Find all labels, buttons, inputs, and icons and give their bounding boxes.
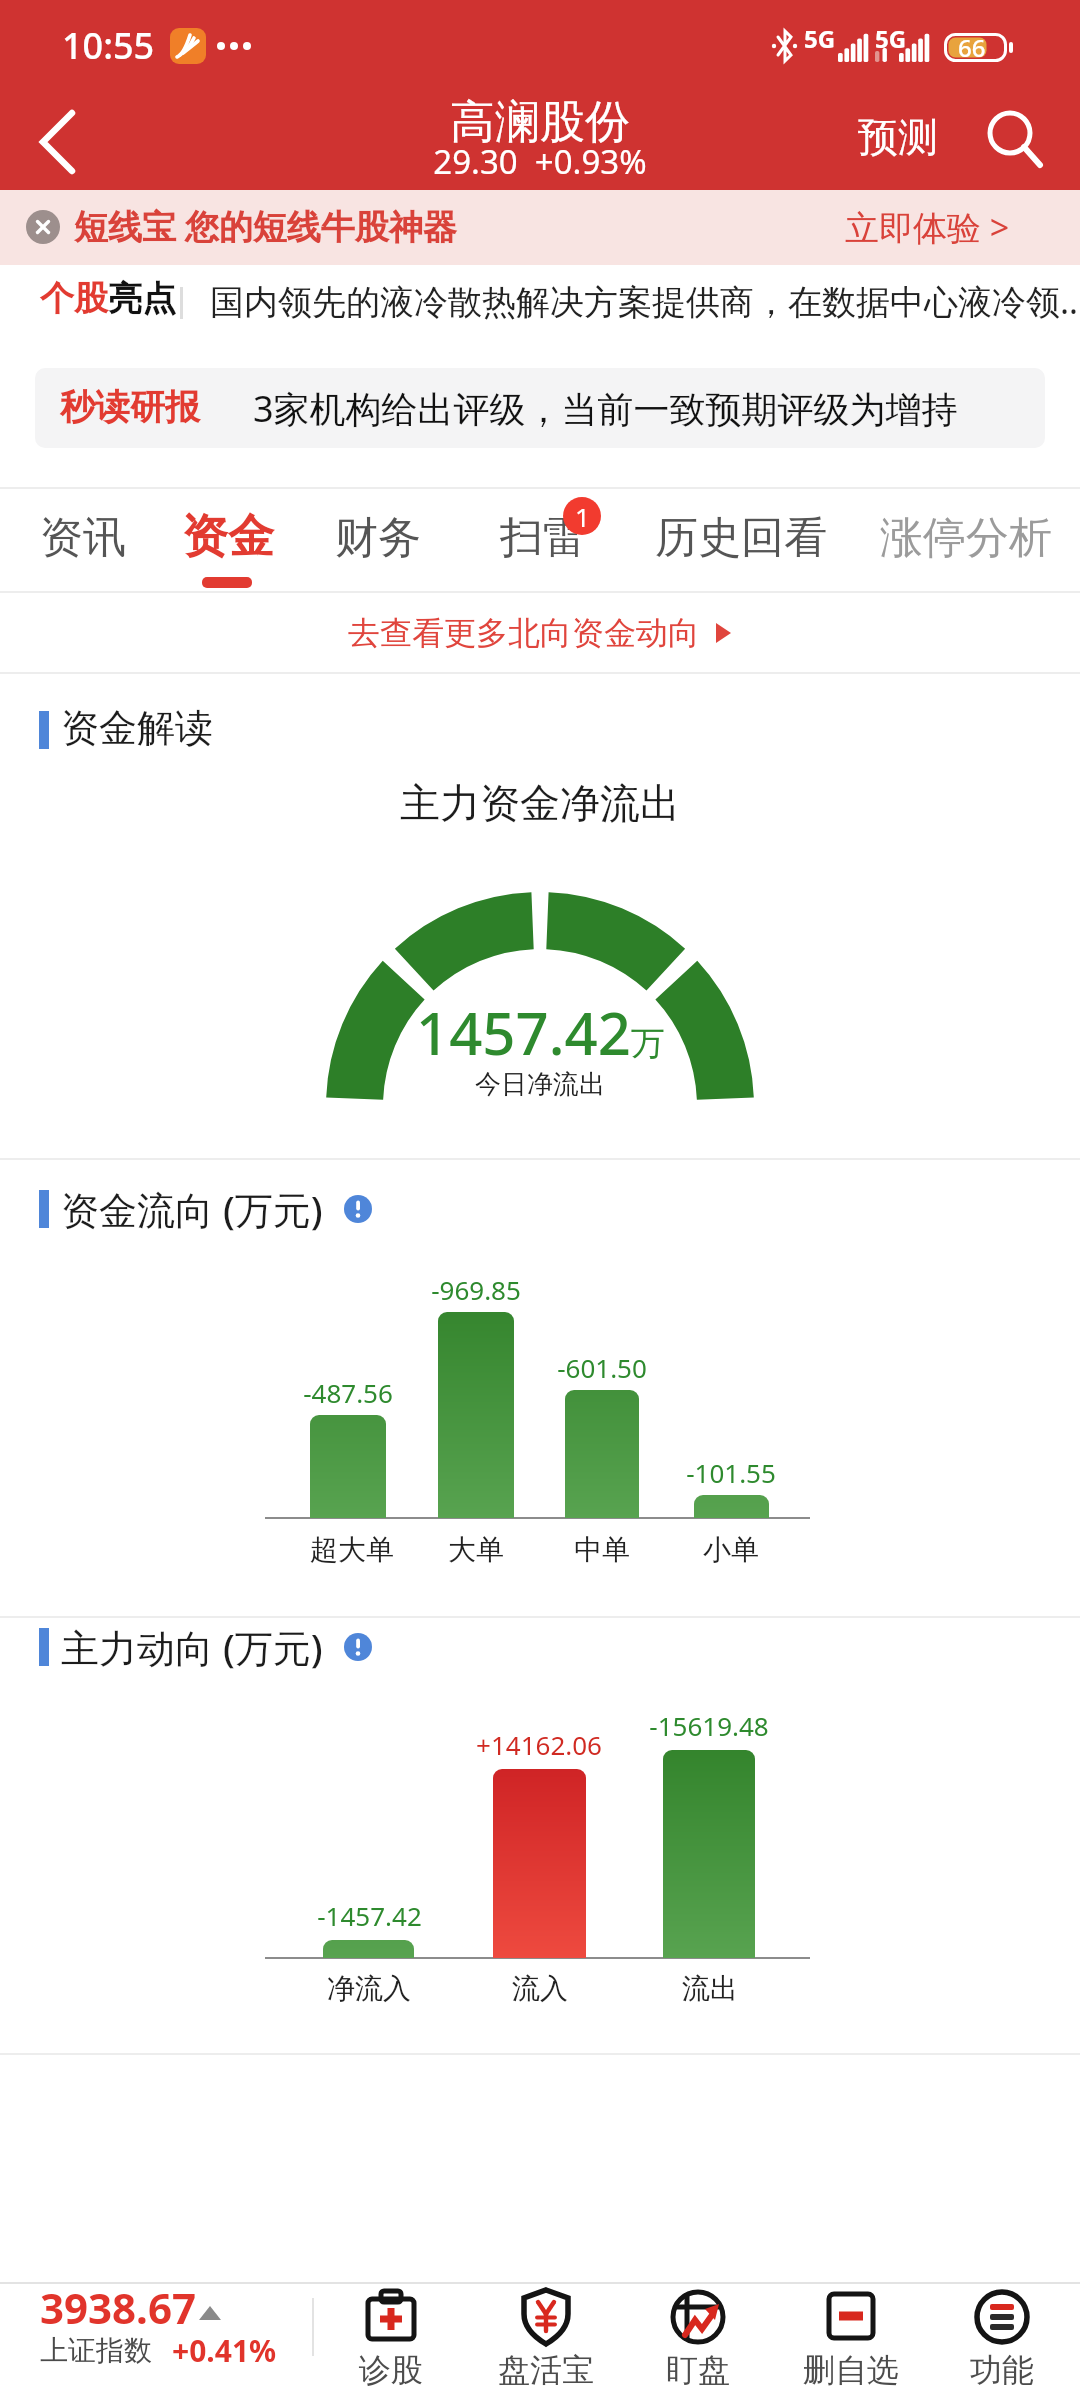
staticText: +0.41%	[172, 2330, 277, 2371]
staticText: 29.30 +0.93%	[433, 139, 647, 184]
button[interactable]	[35, 368, 1045, 448]
staticText: 功能	[970, 2350, 1034, 2390]
staticText: 1	[575, 499, 590, 534]
button[interactable]: 盯盘	[628, 2288, 768, 2396]
staticText: 盯盘	[666, 2350, 730, 2390]
staticText: 流出	[682, 1971, 738, 2006]
staticText: 资金流向 (万元)	[61, 1183, 323, 1235]
button[interactable]: 资讯	[0, 0, 86, 54]
staticText: 中单	[574, 1532, 630, 1567]
staticText: 1457.42万	[416, 993, 665, 1072]
staticText: -15619.48	[649, 1708, 769, 1743]
staticText: 秒读研报	[60, 385, 200, 429]
button[interactable]	[36, 108, 80, 178]
staticText: +14162.06	[476, 1727, 602, 1762]
staticText: -1457.42	[317, 1898, 422, 1933]
button[interactable]: 删自选	[781, 2288, 921, 2396]
staticText: 主力动向 (万元)	[61, 1621, 323, 1673]
staticText: 超大单	[310, 1532, 394, 1567]
staticText: 高澜股份	[450, 94, 630, 151]
staticText: 流入	[512, 1971, 568, 2006]
staticText: -969.85	[431, 1272, 521, 1307]
staticText: 资金解读	[61, 704, 213, 752]
button[interactable]: 功能	[932, 2288, 1072, 2396]
staticText: 短线宝 您的短线牛股神器	[74, 203, 457, 249]
button[interactable]	[0, 190, 1080, 265]
staticText: 盘活宝	[498, 2350, 594, 2390]
button[interactable]: 资金	[0, 0, 92, 58]
staticText: 5G	[804, 22, 836, 55]
button[interactable]: 预测	[0, 0, 80, 50]
staticText: -487.56	[303, 1375, 393, 1410]
staticText: 立即体验 >	[845, 204, 1010, 250]
button[interactable]: 去查看更多北向资金动向	[0, 593, 1080, 672]
staticText: 诊股	[359, 2350, 423, 2390]
staticText: 去查看更多北向资金动向	[348, 613, 700, 653]
staticText: 66	[958, 31, 986, 64]
button[interactable]: 盘活宝	[476, 2288, 616, 2396]
staticText: 10:55	[62, 21, 155, 70]
staticText: 删自选	[803, 2350, 899, 2390]
staticText: -601.50	[557, 1350, 647, 1385]
button[interactable]: 涨停分析	[0, 0, 172, 54]
button[interactable]: 诊股	[321, 2288, 461, 2396]
staticText: 5G	[875, 22, 907, 55]
staticText: 今日净流出	[475, 1068, 605, 1101]
button[interactable]: 财务	[0, 0, 86, 54]
staticText: 小单	[703, 1532, 759, 1567]
staticText: 净流入	[327, 1971, 411, 2006]
staticText: 上证指数	[40, 2333, 152, 2368]
staticText: 主力资金净流出	[400, 778, 680, 828]
button[interactable]: 历史回看	[0, 0, 172, 54]
button[interactable]	[982, 105, 1046, 169]
button[interactable]: 3938.67	[0, 0, 156, 57]
staticText: 个股亮点	[40, 277, 176, 320]
staticText: 3家机构给出评级，当前一致预期评级为增持	[253, 384, 958, 433]
staticText: -101.55	[686, 1455, 776, 1490]
button[interactable]: 扫雷	[0, 0, 86, 54]
staticText: 国内领先的液冷散热解决方案提供商，在数据中心液冷领…	[210, 278, 1080, 324]
staticText: 大单	[448, 1532, 504, 1567]
